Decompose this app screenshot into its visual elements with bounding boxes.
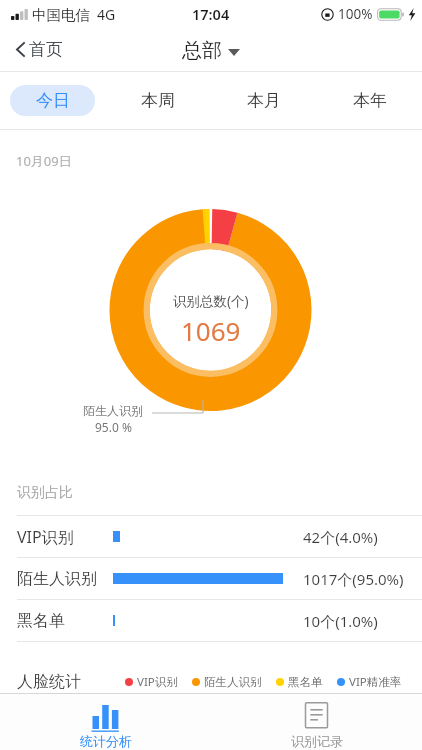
staticText: 本周 [141,90,175,111]
staticText: 95.0 % [95,419,132,435]
button[interactable]: 黑名单 [0,600,422,641]
staticText: 识别记录 [291,733,343,749]
staticText: 本月 [247,90,281,111]
staticText: 总部 [182,38,222,63]
staticText: 42个(4.0%) [303,527,378,547]
staticText: 人脸统计 [17,672,81,692]
button[interactable]: 本月 [221,85,306,116]
staticText: 识别占比 [17,484,73,502]
button[interactable]: 陌生人识别 [0,558,422,599]
staticText: VIP识别 [137,674,178,690]
button[interactable]: 返回首页 [15,39,63,60]
button[interactable]: 本周 [115,85,200,116]
button[interactable]: 今日 [10,85,95,116]
staticText: 识别总数(个) [173,292,249,310]
staticText: 1017个(95.0%) [303,569,404,589]
button[interactable]: 本年 [327,85,412,116]
button[interactable]: VIP识别 [0,516,422,557]
button[interactable]: 识别记录 [211,700,422,750]
staticText: VIP精准率 [349,674,402,690]
button[interactable]: 选择部门 总部 [182,38,240,63]
staticText: 陌生人识别 [83,403,143,418]
staticText: 10个(1.0%) [303,611,378,631]
staticText: 中国电信 [32,6,90,24]
button[interactable]: 统计分析 [0,700,211,750]
staticText: 统计分析 [80,733,132,749]
staticText: 黑名单 [17,611,65,631]
staticText: 陌生人识别 [17,569,97,589]
staticText: 首页 [29,39,63,60]
staticText: VIP识别 [17,526,74,548]
staticText: 1069 [181,313,241,348]
staticText: 4G [97,5,116,24]
staticText: 本年 [353,90,387,111]
staticText: 17:04 [192,4,230,24]
staticText: 今日 [36,90,70,111]
staticText: 10月09日 [16,152,72,170]
staticText: 陌生人识别 [204,675,262,689]
staticText: 100% [338,5,373,23]
staticText: 黑名单 [288,675,323,689]
